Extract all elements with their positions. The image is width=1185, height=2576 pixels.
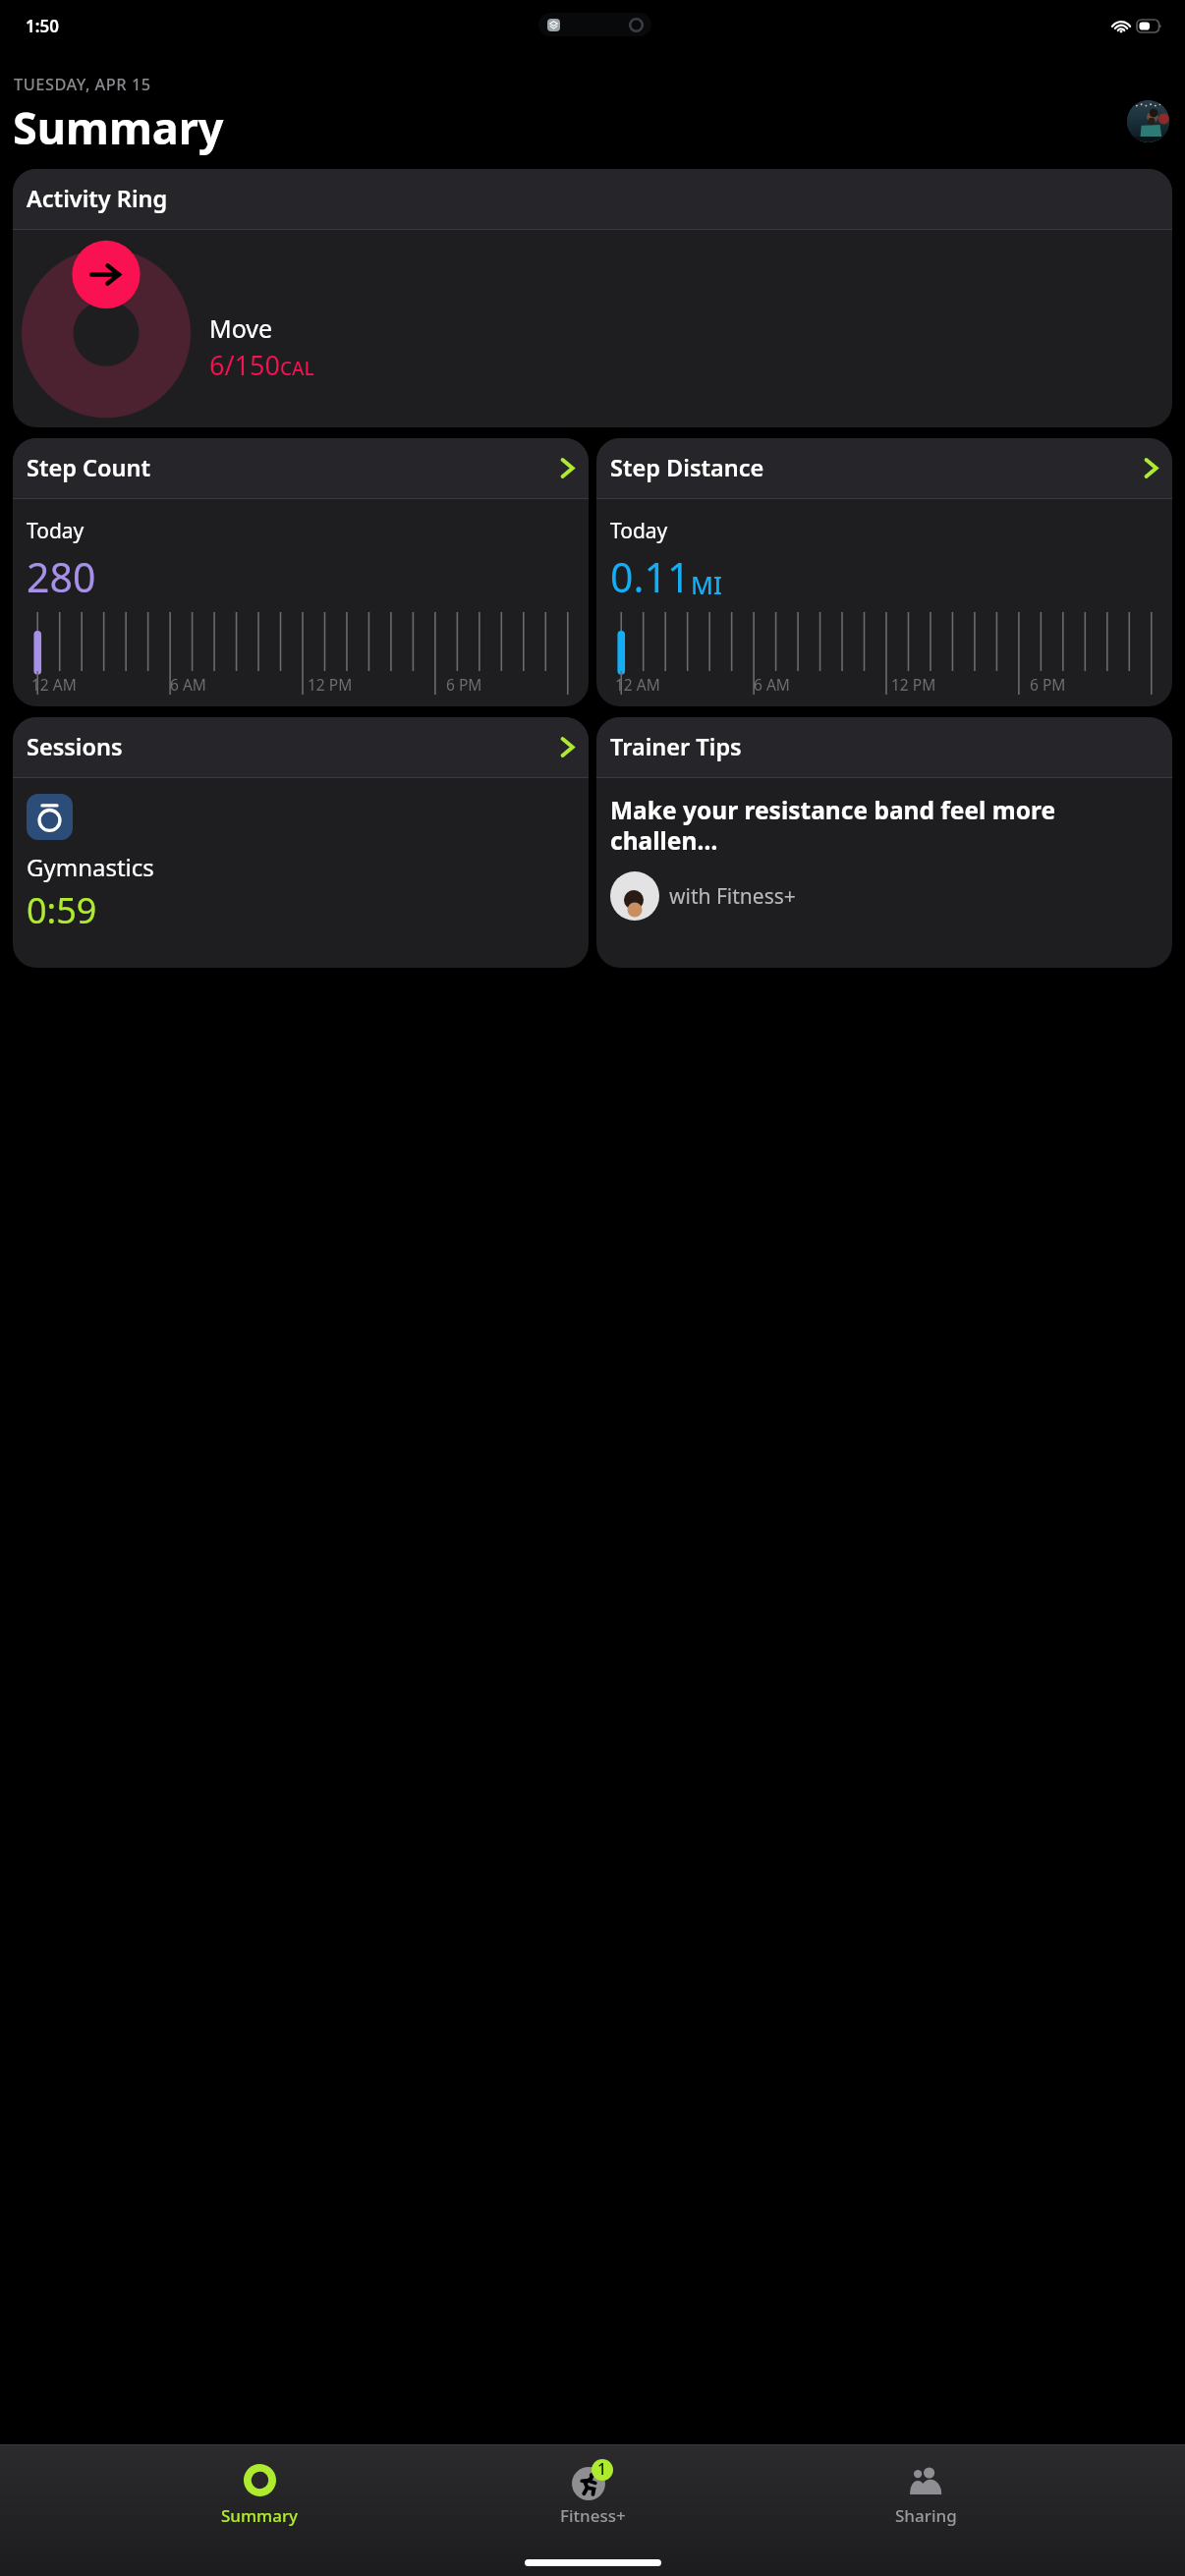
staticText: Today [610,517,668,545]
staticText: Sharing [895,2504,957,2527]
staticText: 6/150 [209,347,280,383]
button[interactable]: Trainer Tips [596,717,1172,968]
button[interactable]: Profile [1127,100,1169,142]
staticText: Trainer Tips [610,731,742,762]
staticText: 12 AM [31,674,77,695]
staticText: Activity Ring [27,183,168,214]
staticText: 0.11 [610,549,691,604]
staticText: Today [27,517,85,545]
staticText: Step Count [27,452,151,483]
staticText: 6 PM [446,674,482,695]
staticText: Gymnastics [27,851,154,883]
staticText: Sessions [27,731,123,762]
staticText: Step Distance [610,452,764,483]
staticText: Summary [221,2504,299,2527]
staticText: 12 PM [308,674,353,695]
button[interactable]: Sharing [852,2457,999,2529]
staticText: 12 PM [891,674,936,695]
staticText: 280 [27,549,96,604]
staticText: Fitness+ [560,2504,626,2527]
staticText: 12 AM [615,674,660,695]
staticText: with Fitness+ [669,882,796,911]
staticText: MI [691,568,722,601]
staticText: CAL [280,356,314,381]
button[interactable]: 1 [519,2457,666,2529]
staticText: 1 [597,2459,607,2480]
staticText: Make your resistance band feel more chal… [610,794,1162,857]
button[interactable]: Step Count [13,438,589,706]
button[interactable]: Step Distance [596,438,1172,706]
staticText: Summary [13,97,224,157]
staticText: Move [209,311,273,345]
staticText: 0:59 [27,886,97,934]
staticText: 6 PM [1030,674,1066,695]
staticText: 1:50 [26,15,59,37]
staticText: 6 AM [754,674,790,695]
staticText: 6 AM [170,674,206,695]
button[interactable]: Summary [186,2457,333,2529]
button[interactable]: Activity Ring [13,169,1172,427]
staticText: TUESDAY, APR 15 [14,73,151,94]
button[interactable]: Sessions [13,717,589,968]
